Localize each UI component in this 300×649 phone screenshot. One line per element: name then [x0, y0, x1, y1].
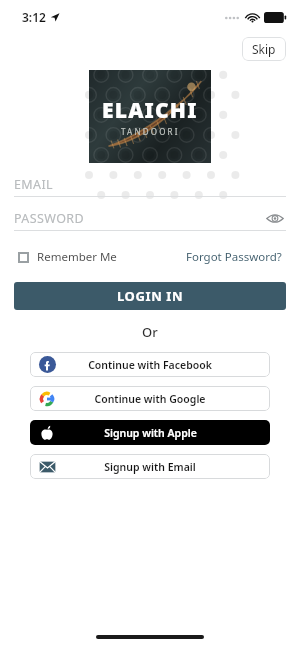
button[interactable]: EMAIL [14, 172, 286, 197]
button[interactable]: Continue with Google [30, 386, 270, 411]
staticText: Continue with Facebook [88, 358, 212, 372]
button[interactable]: Forgot Password? [186, 249, 282, 265]
button[interactable]: Remember Me [18, 249, 117, 265]
button[interactable]: Continue with Facebook [30, 352, 270, 377]
staticText: Forgot Password? [186, 249, 282, 265]
staticText: TANDOORI [121, 126, 180, 137]
staticText: ELAICHI [102, 96, 198, 125]
button[interactable]: Skip [242, 37, 286, 61]
button[interactable]: Signup with Apple [30, 420, 270, 445]
staticText: LOGIN IN [117, 287, 184, 305]
staticText: 3:12 [22, 9, 46, 25]
staticText: Skip [252, 41, 276, 57]
button[interactable]: Signup with Email [30, 454, 270, 479]
staticText: PASSWORD [14, 210, 85, 227]
staticText: Or [142, 323, 158, 341]
staticText: EMAIL [14, 176, 54, 193]
staticText: Remember Me [37, 249, 117, 265]
staticText: Continue with Google [94, 392, 206, 406]
staticText: Signup with Apple [104, 426, 197, 440]
button[interactable]: Show password [264, 207, 286, 229]
button[interactable]: LOGIN IN [14, 282, 286, 310]
button[interactable]: PASSWORD [14, 206, 286, 231]
staticText: Signup with Email [104, 460, 196, 474]
